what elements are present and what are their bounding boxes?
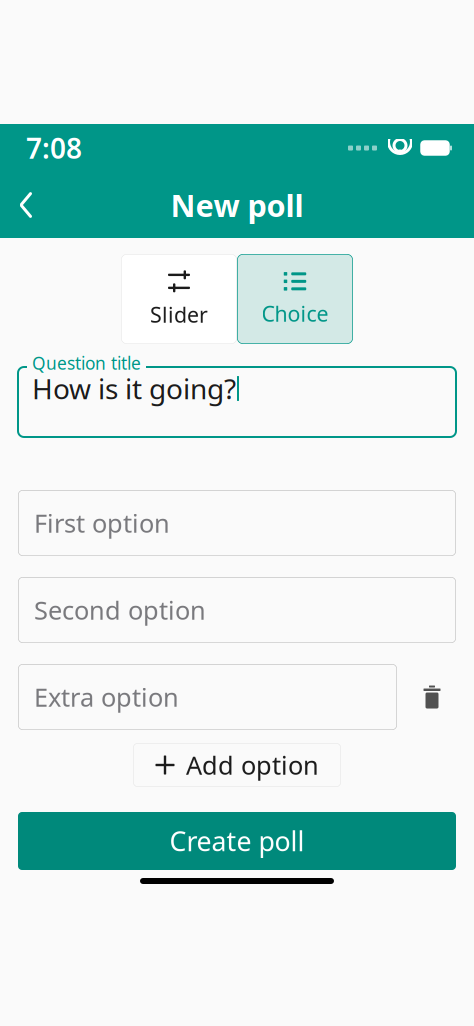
button[interactable]: Create poll xyxy=(18,812,456,870)
button[interactable]: Choice xyxy=(237,254,353,344)
staticText: How is it going? xyxy=(32,370,236,407)
staticText: Add option xyxy=(186,748,319,782)
staticText: Question title xyxy=(32,351,141,374)
button[interactable]: Extra option xyxy=(18,664,397,730)
staticText: New poll xyxy=(170,185,303,225)
staticText: Extra option xyxy=(34,680,179,714)
staticText: First option xyxy=(34,506,170,540)
staticText: Slider xyxy=(150,300,208,329)
staticText: 7:08 xyxy=(26,129,82,167)
button[interactable]: Back xyxy=(0,179,52,231)
staticText: Create poll xyxy=(169,823,304,859)
button[interactable]: Slider xyxy=(121,254,237,344)
button[interactable]: Add option xyxy=(133,743,341,787)
staticText: Second option xyxy=(34,593,206,627)
staticText: Choice xyxy=(261,299,328,328)
button[interactable]: Second option xyxy=(18,577,456,643)
button[interactable]: First option xyxy=(18,490,456,556)
button[interactable]: Delete option xyxy=(408,669,456,725)
